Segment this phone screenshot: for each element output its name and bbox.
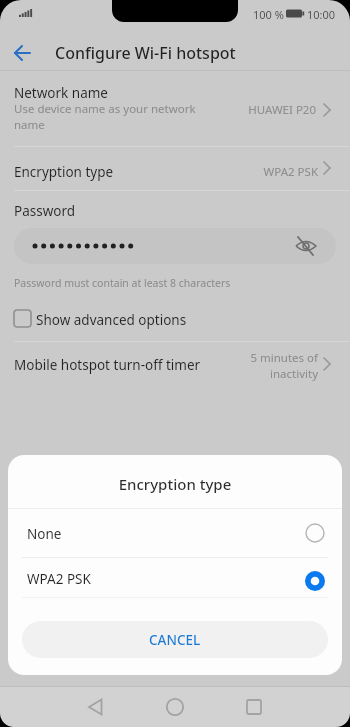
button[interactable]: None [8,509,342,557]
button[interactable] [0,687,116,727]
button[interactable]: Encryption type [0,146,350,190]
staticText: Use device name as your network name [14,101,234,132]
staticText: WPA2 PSK [27,570,177,588]
staticText: Configure Wi-Fi hotspot [55,42,236,64]
button[interactable] [14,228,336,264]
button[interactable]: Network name [0,71,350,146]
staticText: HUAWEI P20 [216,102,316,118]
staticText: 5 minutes of inactivity [218,350,318,381]
staticText: WPA2 PSK [218,164,318,180]
button[interactable]: CANCEL [22,621,328,658]
button[interactable]: Mobile hotspot turn-off timer [0,341,350,389]
staticText: CANCEL [149,631,201,649]
staticText: 100 % [253,7,287,22]
staticText: Password [14,202,214,220]
staticText: Encryption type [14,163,214,181]
staticText: Mobile hotspot turn-off timer [14,356,254,374]
button[interactable]: Show advanced options [0,303,350,336]
button[interactable] [233,687,350,727]
staticText: Encryption type [8,474,342,494]
staticText: Show advanced options [36,311,286,329]
button[interactable] [116,687,233,727]
staticText: Network name [14,84,214,102]
button[interactable]: WPA2 PSK [8,558,342,605]
staticText: 10:00 [307,7,341,22]
button[interactable]: Configure Wi-Fi hotspot [0,35,350,71]
staticText: None [27,525,177,543]
staticText: Password must contain at least 8 charact… [14,276,314,290]
